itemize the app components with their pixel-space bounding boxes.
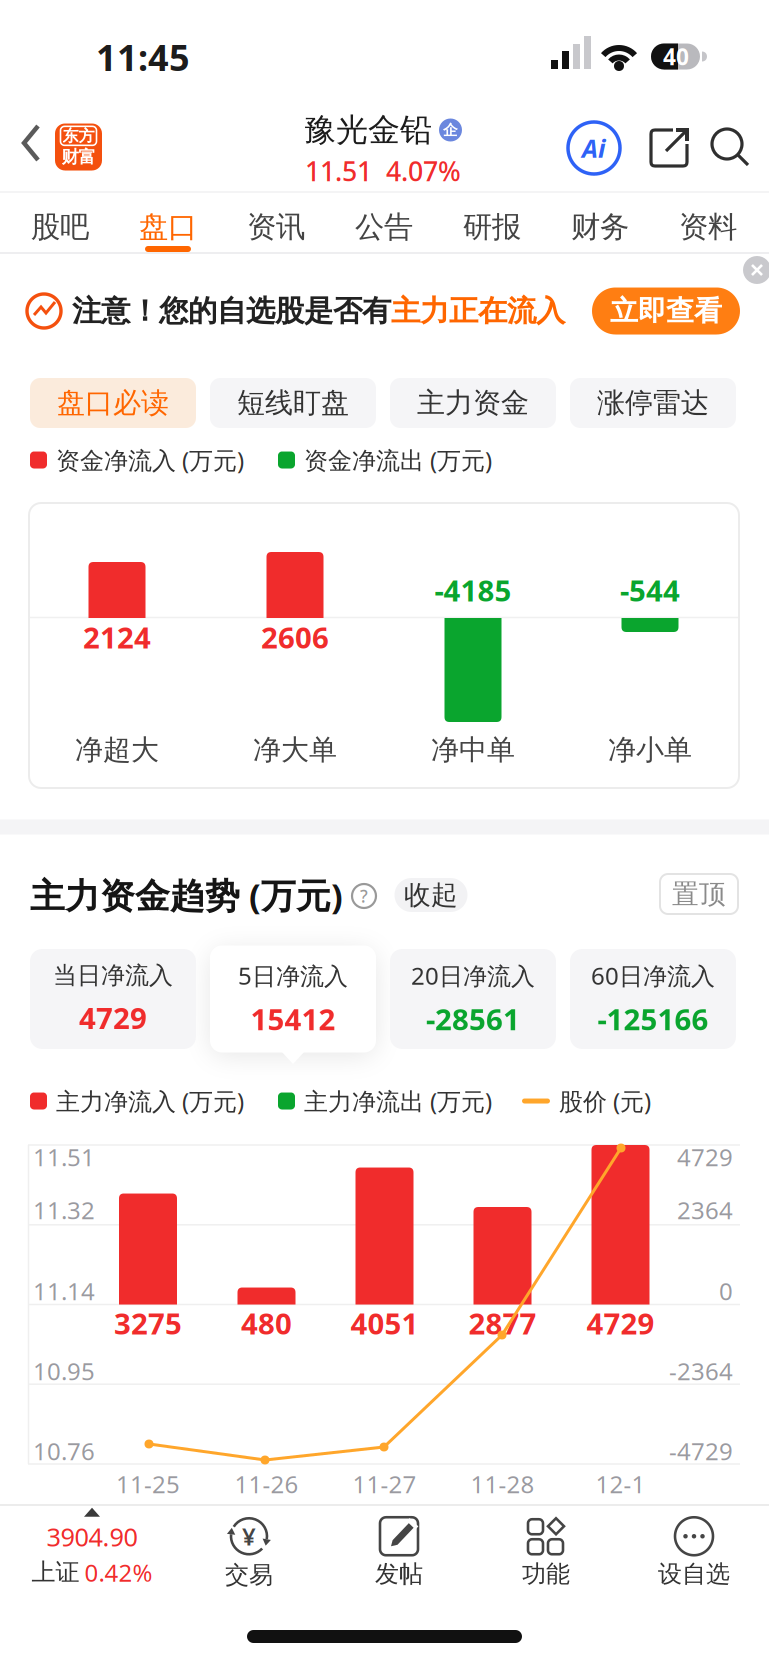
button[interactable]: 涨停雷达 — [570, 378, 736, 428]
button[interactable]: 主力资金 — [390, 378, 556, 428]
staticText: 上证 — [31, 1558, 79, 1587]
staticText: 盘口必读 — [57, 386, 169, 420]
staticText: 11-26 — [234, 1468, 298, 1500]
staticText: 发帖 — [375, 1559, 423, 1589]
staticText: 主力资金趋势 (万元) — [30, 872, 343, 918]
staticText: 净小单 — [608, 733, 692, 767]
staticText: 研报 — [463, 209, 521, 245]
staticText: 4729 — [79, 998, 147, 1037]
button[interactable]: 公告 — [332, 198, 436, 256]
staticText: 3904.90 — [46, 1520, 137, 1553]
button[interactable]: 功能 — [522, 1517, 570, 1589]
staticText: 2606 — [261, 617, 329, 656]
staticText: 15412 — [250, 999, 335, 1038]
button[interactable]: 立即查看 — [592, 287, 740, 334]
staticText: 资料 — [679, 209, 737, 245]
button[interactable]: 财务 — [548, 198, 652, 256]
staticText: -28561 — [426, 999, 520, 1038]
staticText: ¥ — [242, 1520, 256, 1552]
staticText: 资金净流出 (万元) — [304, 444, 492, 476]
button[interactable]: 资料 — [656, 198, 760, 256]
staticText: 10.76 — [33, 1435, 95, 1467]
staticText: 主力净流入 (万元) — [56, 1085, 244, 1117]
staticText: 11.32 — [33, 1194, 95, 1226]
staticText: 10.95 — [33, 1355, 95, 1387]
staticText: 财务 — [571, 209, 629, 245]
staticText: 注意！您的自选股是否有 — [72, 293, 391, 329]
button[interactable]: 资讯 — [224, 198, 328, 256]
staticText: 净大单 — [253, 733, 337, 767]
staticText: 480 — [241, 1303, 292, 1342]
button[interactable]: 收起 — [394, 878, 467, 912]
staticText: 财富 — [61, 146, 95, 168]
staticText: 净中单 — [431, 733, 515, 767]
staticText: 11.14 — [33, 1275, 95, 1307]
staticText: 主力资金 — [417, 386, 529, 420]
button[interactable]: 置顶 — [660, 874, 738, 914]
button[interactable] — [0, 0, 769, 1665]
staticText: 置顶 — [672, 878, 726, 910]
staticText: 11-25 — [116, 1468, 180, 1500]
staticText: -4729 — [669, 1435, 733, 1467]
staticText: -125166 — [597, 999, 708, 1038]
button[interactable]: 股吧 — [8, 198, 112, 256]
staticText: 11:45 — [96, 33, 190, 81]
button[interactable]: 研报 — [440, 198, 544, 256]
staticText: -544 — [620, 570, 680, 609]
staticText: 4051 — [350, 1303, 418, 1342]
staticText: 净超大 — [75, 733, 159, 767]
button[interactable] — [712, 129, 750, 167]
staticText: 豫光金铅 — [304, 110, 432, 150]
staticText: 2877 — [468, 1303, 536, 1342]
staticText: 收起 — [404, 879, 458, 911]
staticText: 企 — [443, 121, 458, 139]
button[interactable]: 20日净流入 — [390, 949, 556, 1049]
button[interactable]: ¥ — [225, 1516, 273, 1590]
staticText: 3275 — [114, 1303, 182, 1342]
staticText: 股价 (元) — [559, 1085, 651, 1117]
staticText: 主力正在流入 — [391, 293, 565, 329]
button[interactable] — [649, 128, 689, 168]
button[interactable]: 短线盯盘 — [210, 378, 376, 428]
staticText: 4729 — [586, 1303, 654, 1342]
staticText: 0.42% — [84, 1556, 152, 1588]
button[interactable]: ? — [352, 884, 376, 908]
button[interactable]: 设自选 — [658, 1517, 730, 1589]
staticText: ? — [360, 884, 368, 907]
button[interactable]: 盘口必读 — [30, 378, 196, 428]
button[interactable]: 当日净流入 — [30, 949, 196, 1049]
staticText: 4729 — [677, 1141, 733, 1173]
staticText: 当日净流入 — [53, 961, 173, 990]
staticText: 涨停雷达 — [597, 386, 709, 420]
button[interactable]: 东方 — [55, 123, 102, 170]
staticText: 资金净流入 (万元) — [56, 444, 244, 476]
staticText: 5日净流入 — [238, 960, 348, 991]
staticText: Ai — [582, 131, 606, 165]
staticText: 11.51 — [33, 1141, 95, 1173]
button[interactable]: 发帖 — [375, 1517, 423, 1589]
staticText: 11-28 — [470, 1468, 534, 1500]
staticText: 2364 — [677, 1194, 733, 1226]
staticText: 60日净流入 — [591, 960, 715, 991]
button[interactable]: 3904.90 — [31, 1508, 152, 1588]
staticText: -4185 — [434, 570, 511, 609]
staticText: 设自选 — [658, 1559, 730, 1589]
staticText: 盘口 — [139, 209, 197, 245]
staticText: 主力净流出 (万元) — [304, 1085, 492, 1117]
staticText: 资讯 — [247, 209, 305, 245]
staticText: 11.51 4.07% — [305, 153, 461, 189]
staticText: 公告 — [355, 209, 413, 245]
button[interactable]: 60日净流入 — [570, 949, 736, 1049]
staticText: 交易 — [225, 1560, 273, 1590]
button[interactable]: 盘口 — [116, 198, 220, 256]
staticText: 40 — [663, 41, 689, 71]
staticText: 短线盯盘 — [237, 386, 349, 420]
button[interactable]: Ai — [566, 120, 622, 176]
staticText: 11-27 — [352, 1468, 416, 1500]
button[interactable] — [743, 256, 769, 284]
staticText: 立即查看 — [610, 294, 722, 328]
staticText: 东方 — [62, 126, 94, 146]
staticText: 功能 — [522, 1559, 570, 1589]
staticText: 股吧 — [31, 209, 89, 245]
button[interactable]: 5日净流入 — [210, 945, 376, 1052]
